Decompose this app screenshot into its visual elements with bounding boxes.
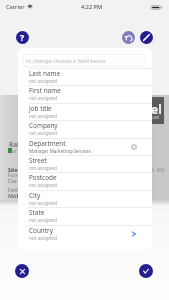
staticText: Last name — [29, 69, 61, 78]
staticText: State — [29, 208, 45, 217]
staticText: Street — [29, 156, 47, 165]
button[interactable]: Postcode — [18, 172, 152, 189]
button[interactable]: Cancel — [15, 264, 29, 278]
staticText: Carrier — [6, 3, 25, 11]
staticText: uel — [152, 114, 160, 121]
staticText: Forc — [8, 171, 19, 178]
staticText: not assigned — [29, 165, 57, 171]
staticText: City — [29, 191, 41, 200]
button[interactable]: Company — [18, 120, 152, 137]
staticText: First name — [29, 86, 61, 95]
staticText: Job title — [29, 104, 52, 113]
staticText: not assigned — [29, 78, 57, 84]
button[interactable]: Street — [18, 155, 152, 172]
staticText: not assigned — [29, 235, 57, 241]
button[interactable]: Country — [18, 225, 152, 242]
staticText: Department — [29, 139, 66, 148]
button[interactable]: Edit — [140, 31, 153, 44]
button[interactable]: to change choose a field below — [23, 54, 146, 67]
button[interactable]: Job title — [18, 103, 152, 120]
staticText: 6, KO — [151, 166, 165, 173]
staticText: Postcode — [29, 173, 57, 182]
staticText: not assigned — [29, 130, 57, 136]
staticText: not assigned — [29, 95, 57, 101]
staticText: 4:22 PM — [81, 3, 103, 11]
button[interactable]: City — [18, 190, 152, 207]
button[interactable]: Confirm — [139, 264, 153, 278]
staticText: not assigned — [29, 217, 57, 223]
staticText: to change choose a field below — [26, 57, 106, 64]
button[interactable]: Department — [18, 138, 152, 155]
staticText: not assigned — [29, 200, 57, 206]
button[interactable]: State — [18, 207, 152, 224]
staticText: Company — [29, 121, 58, 130]
staticText: not assigned — [29, 182, 57, 188]
button[interactable]: Help — [16, 31, 29, 44]
staticText: not assigned — [29, 113, 57, 119]
staticText: Country — [29, 226, 54, 235]
staticText: Mob — [8, 192, 20, 199]
button[interactable]: Undo — [122, 31, 135, 44]
staticText: ar — [12, 147, 18, 154]
staticText: Ide — [8, 166, 18, 174]
button[interactable]: Last name — [18, 68, 152, 85]
staticText: Ral — [9, 140, 19, 149]
staticText: el — [151, 101, 162, 117]
staticText: Manager Marketing-Services — [29, 148, 91, 154]
button[interactable]: First name — [18, 85, 152, 102]
staticText: ? — [20, 32, 25, 44]
staticText: Fon — [8, 186, 18, 193]
staticText: Dar — [8, 177, 18, 184]
